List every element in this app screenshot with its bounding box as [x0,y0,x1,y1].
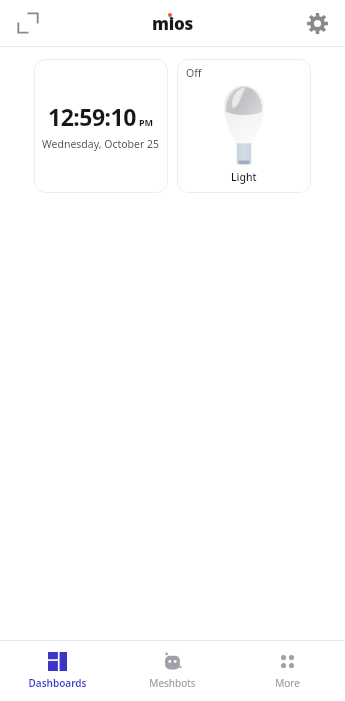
staticText: Light [231,170,257,184]
staticText: Off [186,66,202,80]
staticText: Meshbots [149,676,196,690]
button[interactable]: Expand [8,3,48,43]
staticText: 12:59:10 [48,101,136,132]
button[interactable]: Off [177,59,311,193]
staticText: Wednesday, October 25 [42,137,160,151]
staticText: More [275,676,300,690]
staticText: PM [139,116,154,128]
button[interactable]: 12:59:10 [34,59,168,193]
button[interactable]: More [230,646,345,696]
button[interactable]: Settings [297,3,337,43]
staticText: Dashboards [28,676,87,690]
button[interactable]: Dashboards [0,646,115,696]
staticText: mios [152,12,193,35]
button[interactable]: Meshbots [115,646,230,696]
